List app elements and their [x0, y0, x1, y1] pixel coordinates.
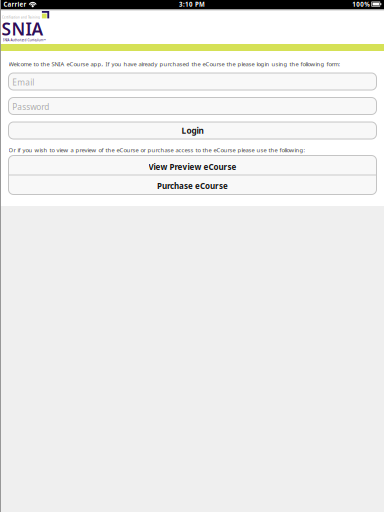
staticText: 100%: [352, 0, 370, 9]
staticText: SNIA: [1, 17, 43, 41]
staticText: Password: [12, 101, 49, 112]
button[interactable]: Email: [8, 73, 376, 90]
button[interactable]: View Preview eCourse: [8, 155, 376, 174]
button[interactable]: Purchase eCourse: [8, 175, 376, 194]
staticText: Welcome to the SNIA eCourse app, If you …: [8, 60, 340, 68]
staticText: Carrier: [3, 0, 26, 9]
staticText: View Preview eCourse: [148, 162, 236, 172]
staticText: Email: [12, 77, 34, 88]
staticText: Login: [181, 125, 203, 136]
staticText: Certification and Training: [2, 15, 40, 19]
button[interactable]: Password: [8, 97, 376, 114]
staticText: SNIA Authorized Curriculum™: [3, 38, 46, 42]
staticText: Or if you wish to view a preview of the …: [8, 146, 305, 154]
staticText: 3:10 PM: [179, 0, 205, 9]
staticText: Purchase eCourse: [157, 181, 228, 191]
button[interactable]: Login: [8, 122, 376, 139]
